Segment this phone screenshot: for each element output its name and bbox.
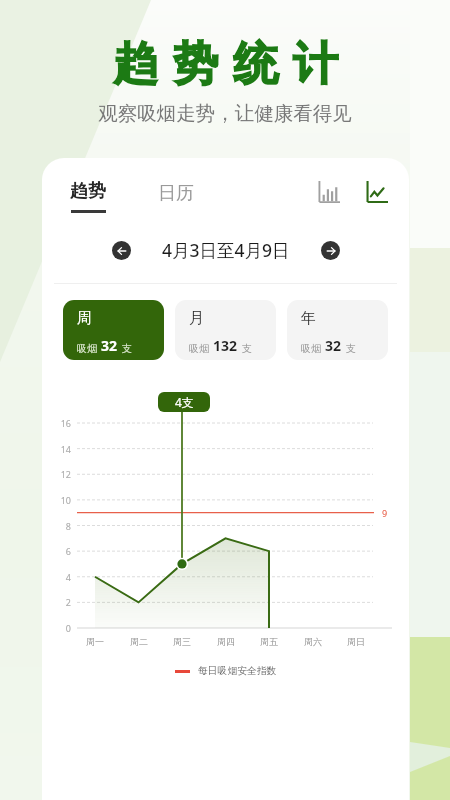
staticText: 4 <box>55 571 71 583</box>
staticText: 0 <box>55 622 71 634</box>
staticText: 4月3日至4月9日 <box>162 238 290 262</box>
staticText: 趋势 <box>70 180 106 203</box>
staticText: 支 <box>242 342 252 355</box>
staticText: 周日 <box>340 636 372 647</box>
staticText: 观察吸烟走势，让健康看得见 <box>0 101 450 126</box>
button[interactable]: 年 <box>287 300 388 360</box>
staticText: 10 <box>55 494 71 506</box>
staticText: 2 <box>55 596 71 608</box>
staticText: 周四 <box>210 636 242 647</box>
staticText: 周三 <box>166 636 198 647</box>
button[interactable]: Line chart view <box>366 181 388 203</box>
staticText: 支 <box>346 342 356 355</box>
staticText: 32 <box>325 336 342 355</box>
staticText: 周一 <box>79 636 111 647</box>
staticText: 吸烟 <box>77 342 97 355</box>
staticText: 吸烟 <box>189 342 209 355</box>
staticText: 支 <box>122 342 132 355</box>
staticText: 32 <box>101 336 118 355</box>
staticText: 16 <box>55 417 71 429</box>
staticText: 12 <box>55 468 71 480</box>
staticText: 8 <box>55 520 71 532</box>
staticText: 6 <box>55 545 71 557</box>
button[interactable]: Next week <box>321 241 340 260</box>
staticText: 周六 <box>297 636 329 647</box>
button[interactable]: 周 <box>63 300 164 360</box>
button[interactable]: 月 <box>175 300 276 360</box>
staticText: 9 <box>382 507 388 519</box>
staticText: 吸烟 <box>301 342 321 355</box>
staticText: 月 <box>189 309 204 328</box>
staticText: 周二 <box>123 636 155 647</box>
staticText: 年 <box>301 309 316 328</box>
button[interactable]: 趋势 <box>68 178 108 215</box>
staticText: 周 <box>77 309 92 328</box>
button[interactable]: Previous week <box>112 241 131 260</box>
staticText: 每日吸烟安全指数 <box>198 665 277 677</box>
staticText: 周五 <box>253 636 285 647</box>
button[interactable]: Bar chart view <box>318 181 340 203</box>
staticText: 4支 <box>175 394 194 410</box>
staticText: 日历 <box>158 182 194 205</box>
button[interactable]: 日历 <box>156 180 196 207</box>
staticText: 132 <box>213 336 238 355</box>
staticText: 14 <box>55 443 71 455</box>
staticText: 趋势统计 <box>8 36 450 93</box>
